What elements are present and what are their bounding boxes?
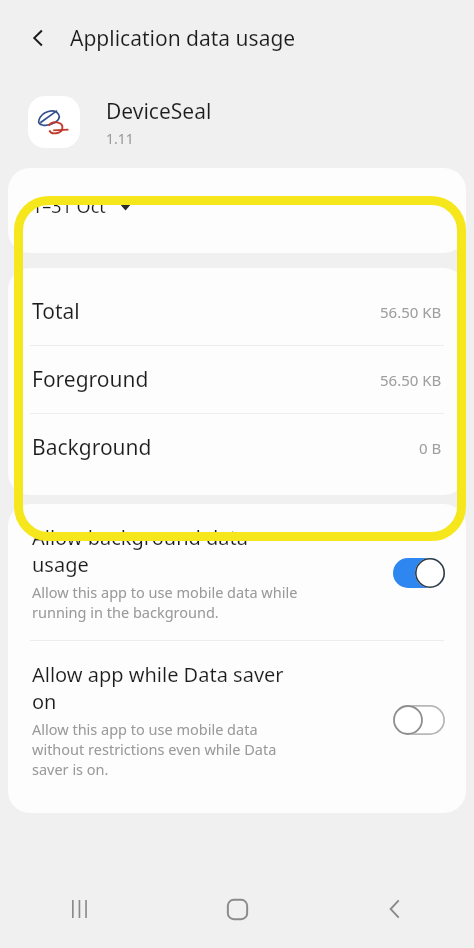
button[interactable]: 1–31 Oct bbox=[8, 168, 466, 253]
button[interactable]: Home bbox=[158, 870, 316, 948]
button[interactable]: Total bbox=[8, 278, 466, 345]
staticText: Background bbox=[32, 433, 152, 462]
button[interactable]: Recent apps bbox=[0, 870, 158, 948]
button[interactable]: Back bbox=[316, 870, 474, 948]
staticText: 1.11 bbox=[106, 129, 134, 148]
staticText: 1–31 Oct bbox=[32, 194, 106, 219]
staticText: Allow app while Data saver on bbox=[32, 661, 284, 715]
button[interactable]: Back bbox=[20, 20, 56, 56]
staticText: Allow background data usage bbox=[32, 524, 248, 578]
staticText: Allow this app to use mobile data while … bbox=[32, 582, 298, 622]
staticText: 0 B bbox=[419, 438, 442, 458]
button[interactable]: Foreground bbox=[8, 346, 466, 413]
button[interactable]: Allow app while Data saver on bbox=[8, 641, 466, 797]
button[interactable]: Toggle on bbox=[390, 556, 448, 590]
staticText: Application data usage bbox=[70, 24, 296, 53]
staticText: Total bbox=[32, 297, 80, 326]
button[interactable]: Allow background data usage bbox=[8, 504, 466, 640]
staticText: 56.50 KB bbox=[380, 370, 442, 390]
staticText: Foreground bbox=[32, 365, 149, 394]
button[interactable]: Background bbox=[8, 414, 466, 481]
staticText: 56.50 KB bbox=[380, 302, 442, 322]
staticText: DeviceSeal bbox=[106, 97, 212, 126]
staticText: Allow this app to use mobile data withou… bbox=[32, 719, 277, 779]
button[interactable]: Toggle off bbox=[390, 703, 448, 737]
